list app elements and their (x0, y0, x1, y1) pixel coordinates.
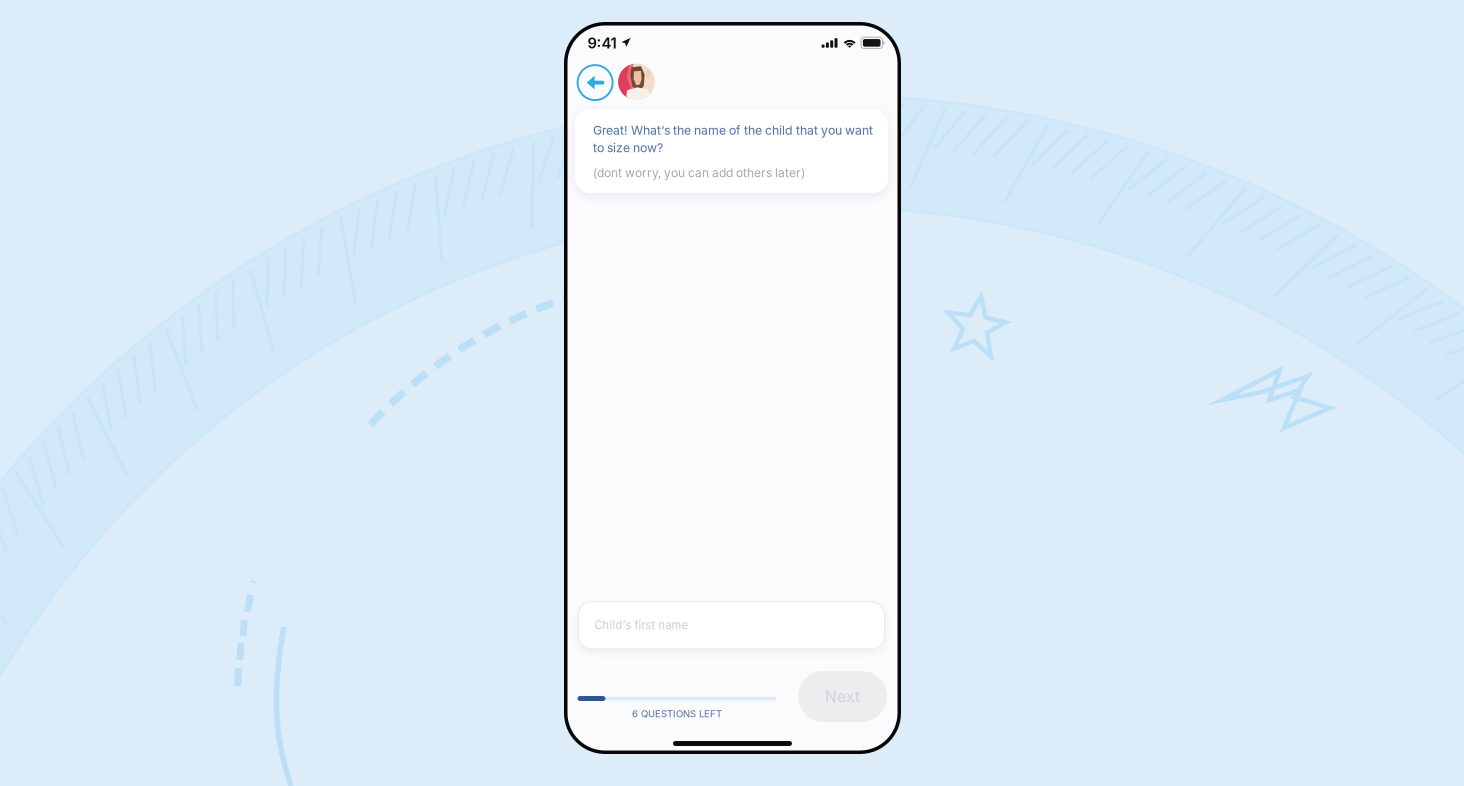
button[interactable]: Back (578, 65, 613, 100)
staticText: Child's first name (594, 619, 687, 632)
staticText: 9:41 (587, 34, 616, 52)
staticText: Great! What‘s the name of the child that… (593, 121, 873, 156)
staticText: 6 QUESTIONS LEFT (632, 708, 722, 719)
staticText: Next (825, 687, 860, 706)
button[interactable]: Child's first name (578, 602, 884, 649)
button[interactable]: Next (798, 671, 887, 722)
staticText: (dont worry, you can add others later) (593, 165, 805, 180)
